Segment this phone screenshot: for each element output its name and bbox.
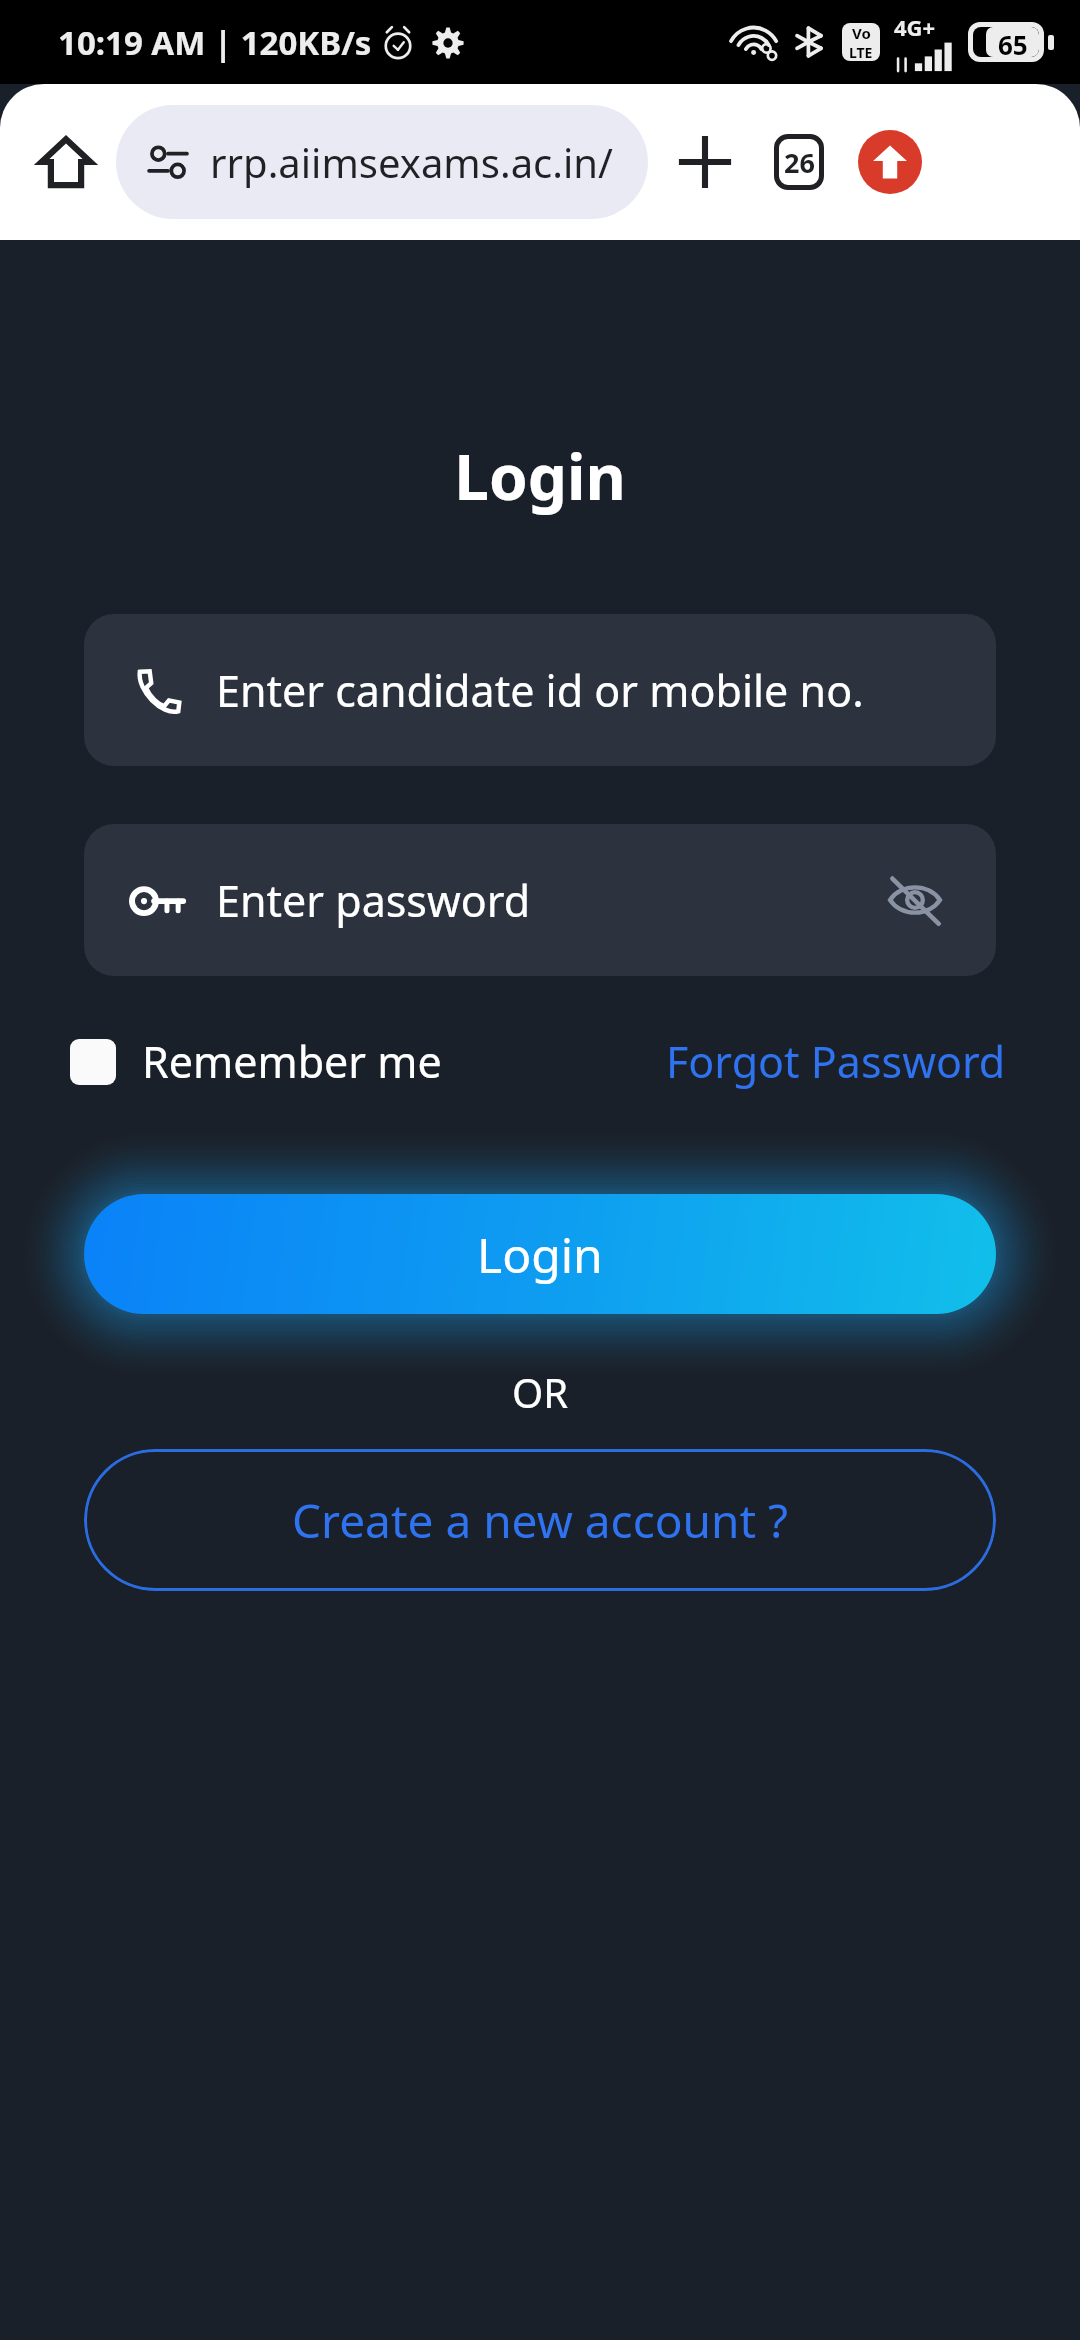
button[interactable]: Create a new account ?: [84, 1449, 996, 1591]
staticText: Login: [477, 1222, 603, 1287]
staticText: Vo: [852, 23, 871, 43]
button[interactable]: New tab: [658, 115, 752, 209]
staticText: OR: [512, 1365, 569, 1419]
button[interactable]: Open tabs, 26: [752, 115, 846, 209]
staticText: Create a new account ?: [292, 1489, 788, 1552]
button[interactable]: Forgot Password: [662, 1020, 1010, 1103]
staticText: 4G+: [894, 12, 936, 42]
staticText: Remember me: [142, 1032, 442, 1091]
button[interactable]: Home: [22, 118, 110, 206]
button[interactable]: Enter password: [84, 824, 996, 976]
button[interactable]: Remember me: [70, 1020, 442, 1103]
staticText: Enter password: [216, 871, 531, 930]
staticText: rrp.aiimsexams.ac.in/: [210, 135, 613, 189]
staticText: Forgot Password: [666, 1032, 1006, 1091]
staticText: 26: [784, 144, 815, 181]
staticText: Login: [454, 434, 626, 518]
button[interactable]: Enter candidate id or mobile no.: [84, 614, 996, 766]
staticText: Enter candidate id or mobile no.: [216, 661, 864, 720]
button[interactable]: rrp.aiimsexams.ac.in/: [116, 105, 648, 219]
button[interactable]: Upload: [846, 118, 934, 206]
staticText: 65: [998, 27, 1028, 57]
staticText: LTE: [849, 43, 873, 61]
button[interactable]: Login: [84, 1194, 996, 1314]
button[interactable]: Show password: [876, 861, 954, 939]
staticText: 10:19 AM | 120KB/s: [58, 20, 372, 65]
